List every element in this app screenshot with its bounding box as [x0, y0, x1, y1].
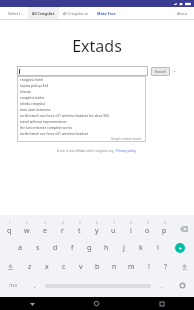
staticText: ,	[34, 282, 36, 290]
staticText: w	[24, 226, 30, 236]
button[interactable]: Shift	[174, 257, 194, 276]
button[interactable]: ?	[157, 257, 174, 276]
button[interactable]: More options	[172, 67, 177, 76]
button[interactable]: Make Free	[93, 7, 120, 20]
button[interactable]: a	[11, 238, 29, 257]
button[interactable]: All Craigslist xx	[59, 7, 93, 20]
button[interactable]: f	[64, 238, 81, 257]
button[interactable]: Search	[151, 67, 170, 76]
button[interactable]: 7	[105, 219, 122, 238]
button[interactable]: twin ucim business	[17, 106, 146, 112]
button[interactable]: x	[38, 257, 55, 276]
staticText: c	[62, 262, 66, 272]
staticText: 1	[9, 221, 11, 225]
staticText: v	[79, 262, 83, 272]
staticText: a	[18, 243, 22, 253]
staticText: craigslist hotel	[20, 77, 44, 82]
staticText: travel without representation	[20, 119, 67, 124]
button[interactable]: 8	[122, 219, 139, 238]
button[interactable]: ,	[26, 276, 43, 295]
button[interactable]: turtle beach ear force x31 wireless head…	[17, 112, 146, 118]
button[interactable]: 6	[88, 219, 105, 238]
staticText: toyota pickup 4x4	[20, 83, 49, 88]
staticText: ?	[164, 262, 168, 272]
staticText: l	[157, 243, 159, 253]
staticText: Privacy policy	[116, 149, 137, 153]
staticText: toledo craigslist	[20, 101, 46, 106]
staticText: 5	[79, 221, 81, 225]
button[interactable]: z	[21, 257, 38, 276]
staticText: .	[161, 282, 163, 290]
button[interactable]: 9	[139, 219, 156, 238]
button[interactable]: Home	[64, 297, 129, 310]
staticText: d	[53, 243, 58, 253]
button[interactable]: Enter	[166, 238, 194, 257]
button[interactable]: Back	[0, 297, 64, 310]
staticText: y	[95, 226, 99, 236]
button[interactable]: m	[123, 257, 140, 276]
button[interactable]: h	[98, 238, 115, 257]
staticText: About	[177, 11, 187, 16]
button[interactable]: Recent apps	[129, 297, 194, 310]
button[interactable]: k	[132, 238, 149, 257]
staticText: turtle beach ear force x31 wireless head…	[20, 113, 109, 118]
staticText: the last enforcer complete series	[20, 125, 73, 130]
button[interactable]: d	[47, 238, 64, 257]
staticText: h	[104, 243, 109, 253]
button[interactable]: n	[106, 257, 123, 276]
button[interactable]: toyota pickup 4x4	[17, 82, 146, 88]
button[interactable]: l	[149, 238, 166, 257]
button[interactable]	[17, 66, 148, 76]
button[interactable]: 5	[71, 219, 88, 238]
button[interactable]: craigslist trailer	[17, 94, 146, 100]
button[interactable]: 4	[54, 219, 71, 238]
staticText: craigslist trailer	[20, 95, 45, 100]
button[interactable]: Emoji	[170, 276, 194, 295]
staticText: i	[130, 226, 132, 236]
staticText: s	[36, 243, 40, 253]
button[interactable]: Shift	[0, 257, 21, 276]
staticText: g	[87, 243, 92, 253]
button[interactable]: Select L...	[4, 7, 28, 20]
button[interactable]: Privacy policy	[116, 149, 137, 153]
staticText: Select L...	[8, 11, 24, 16]
button[interactable]: 0	[156, 219, 173, 238]
button[interactable]: !	[140, 257, 157, 276]
staticText: twin ucim business	[20, 107, 51, 112]
button[interactable]: g	[81, 238, 98, 257]
staticText: n	[112, 262, 117, 272]
button[interactable]: turtle beach ear force x31 wireless head…	[17, 130, 146, 136]
staticText: p	[162, 226, 167, 236]
staticText: Extads	[0, 35, 194, 57]
staticText: q	[7, 226, 12, 236]
button[interactable]: tribute	[17, 88, 146, 94]
button[interactable]: All Craigslist	[28, 7, 59, 20]
staticText: All Craigslist	[32, 11, 55, 16]
button[interactable]: the last enforcer complete series	[17, 124, 146, 130]
staticText: b	[95, 262, 100, 272]
staticText: m	[128, 262, 135, 272]
button[interactable]: toledo craigslist	[17, 100, 146, 106]
button[interactable]: About	[174, 9, 190, 18]
staticText: t	[78, 226, 81, 236]
button[interactable]: s	[29, 238, 47, 257]
button[interactable]: travel without representation	[17, 118, 146, 124]
button[interactable]: c	[55, 257, 72, 276]
button[interactable]: Space	[43, 276, 153, 295]
staticText: Search	[155, 69, 166, 74]
button[interactable]: Backspace	[173, 219, 194, 238]
staticText: tribute	[20, 89, 31, 94]
button[interactable]: v	[72, 257, 89, 276]
button[interactable]: b	[89, 257, 106, 276]
button[interactable]: j	[115, 238, 132, 257]
button[interactable]: ?123	[0, 276, 26, 295]
staticText: 8	[130, 221, 132, 225]
staticText: Google custom search	[111, 137, 142, 141]
button[interactable]: 1	[0, 219, 18, 238]
button[interactable]: craigslist hotel	[17, 76, 146, 82]
button[interactable]: 3	[36, 219, 54, 238]
button[interactable]: 2	[18, 219, 36, 238]
staticText: 9	[147, 221, 149, 225]
staticText: turtle beach ear force x31 wireless head…	[20, 131, 89, 136]
